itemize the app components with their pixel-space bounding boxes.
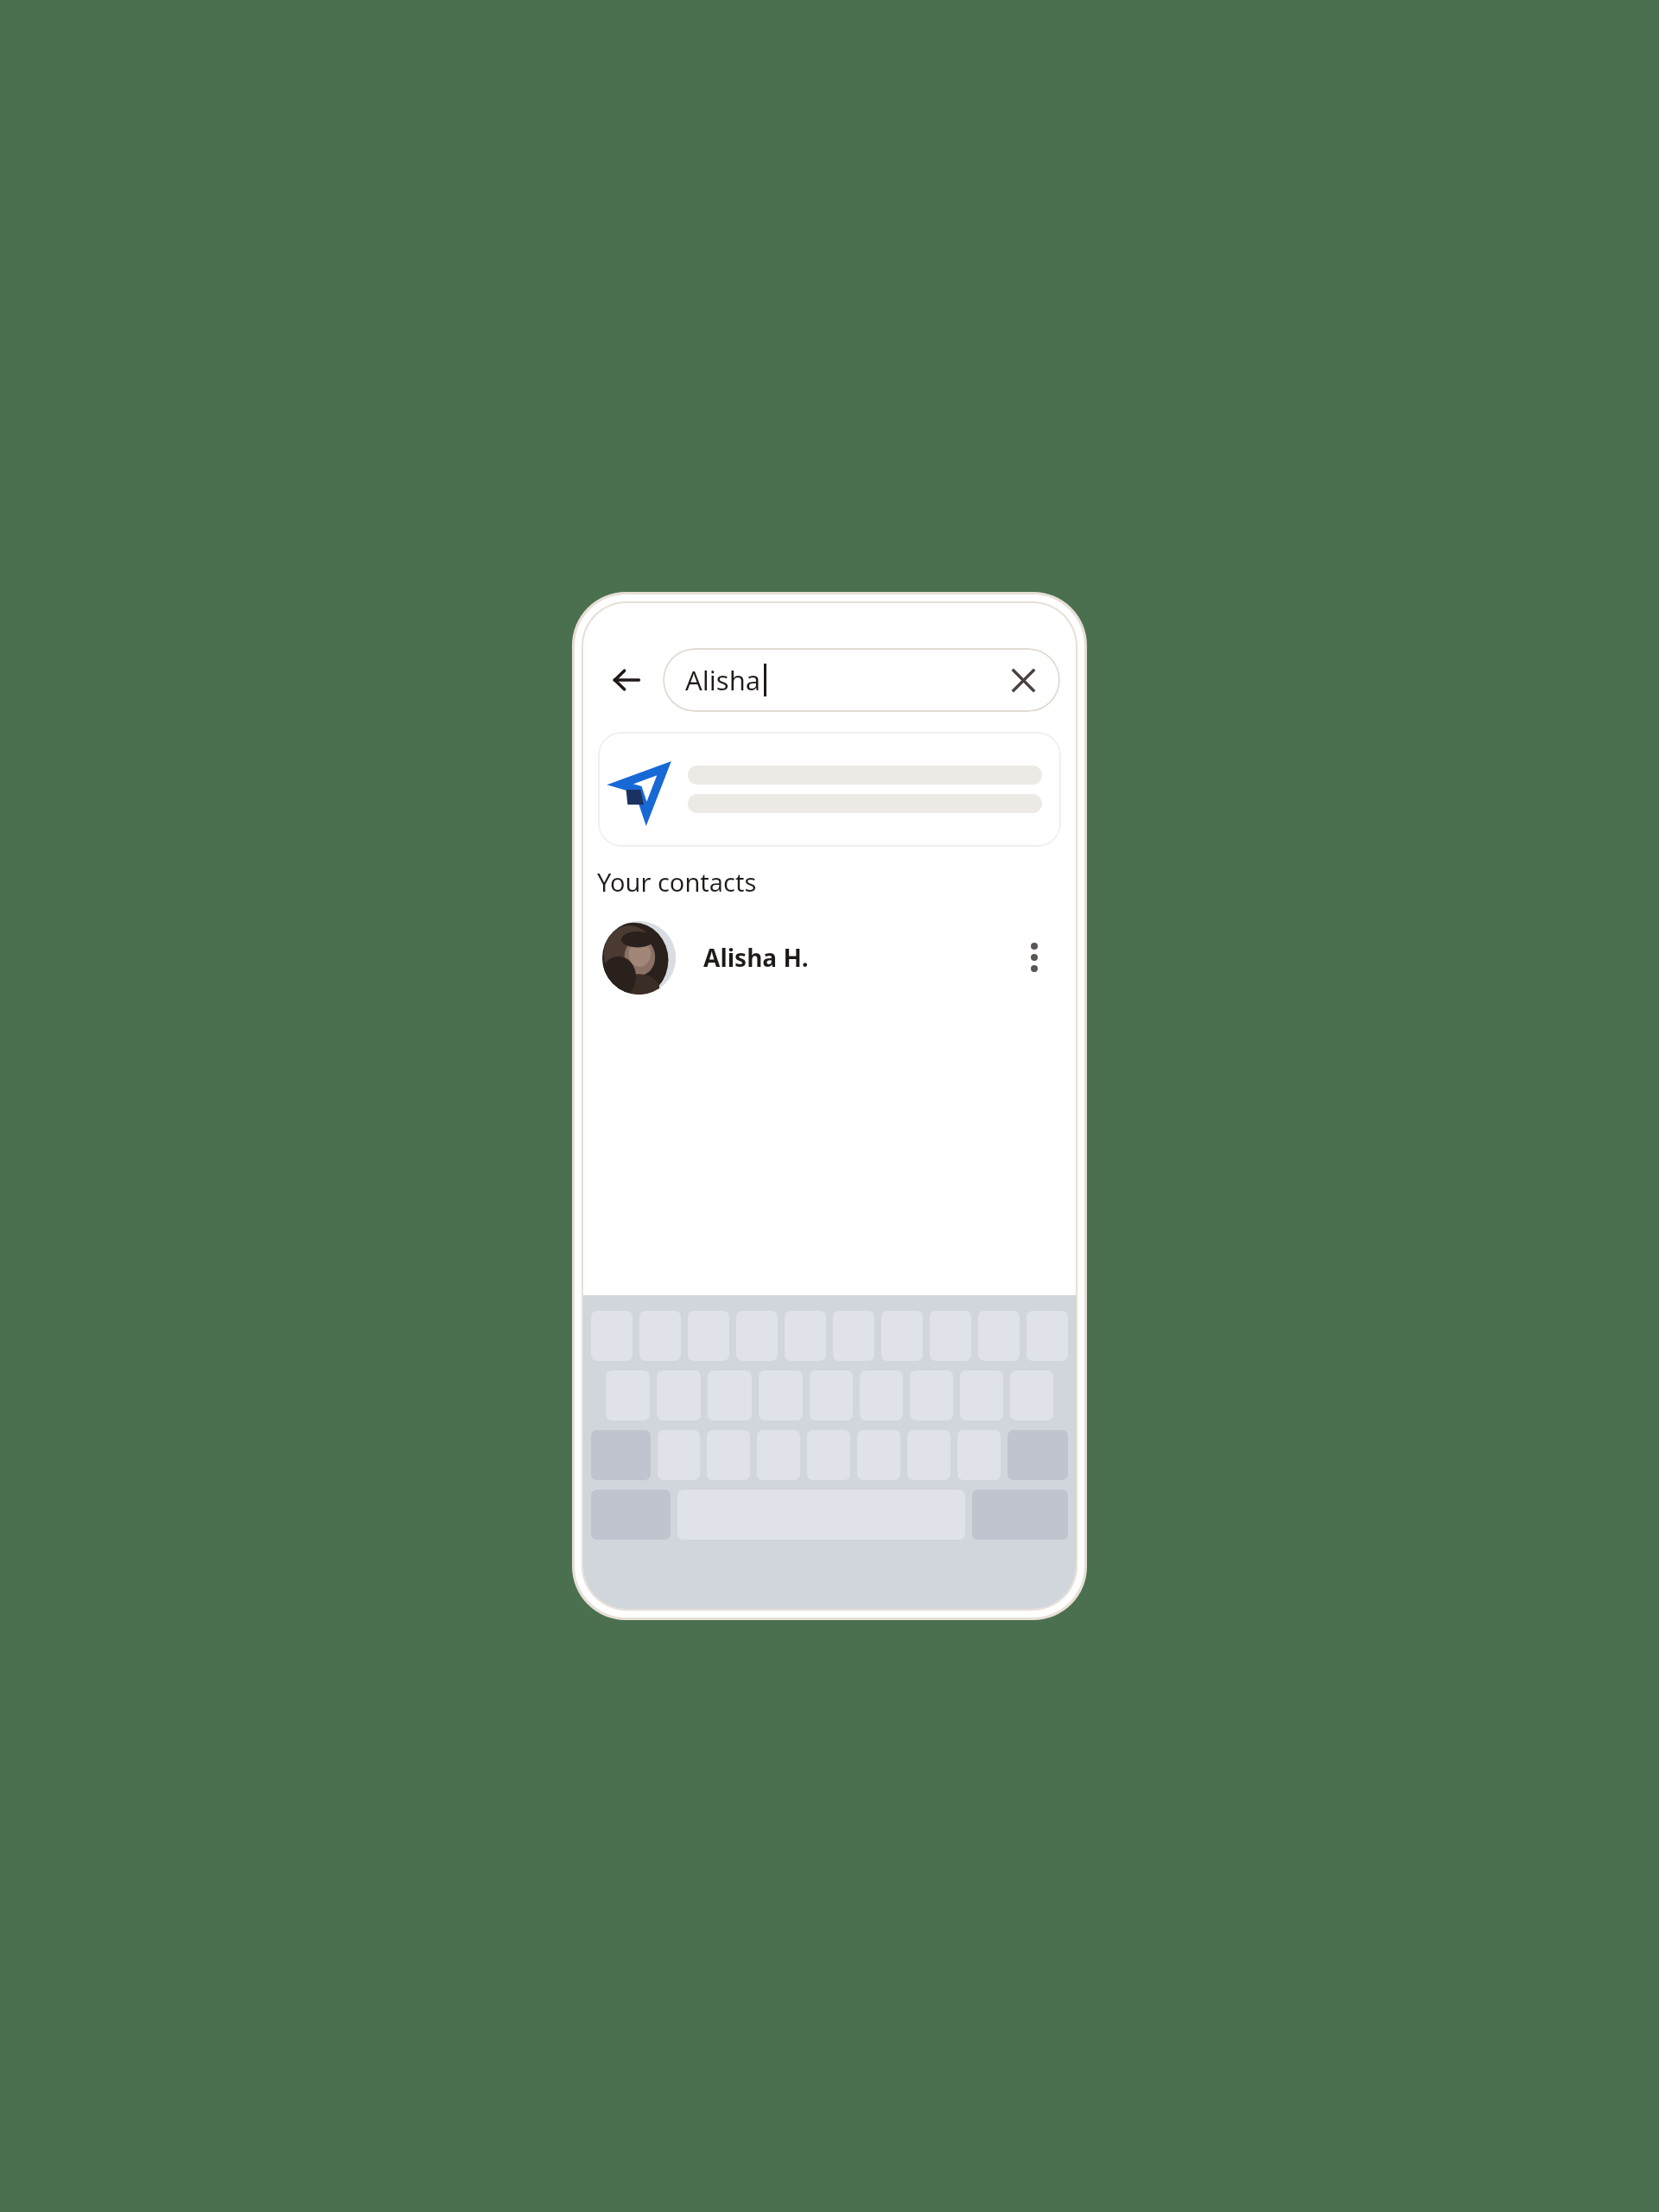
button[interactable]: Shift xyxy=(591,1430,651,1480)
staticText: Your contacts xyxy=(597,865,757,899)
button[interactable]: Backspace xyxy=(1007,1430,1068,1480)
staticText: Alisha H. xyxy=(703,941,809,974)
button[interactable]: Back xyxy=(602,656,651,704)
button[interactable] xyxy=(598,732,1061,847)
button[interactable]: Alisha H. xyxy=(583,914,1076,1001)
button[interactable]: Clear search xyxy=(1000,657,1046,703)
button[interactable]: More options xyxy=(1010,933,1058,982)
button[interactable]: Alisha xyxy=(663,648,1060,712)
staticText: Alisha xyxy=(685,662,761,698)
